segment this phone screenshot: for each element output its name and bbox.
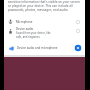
staticText: Sound from your device, like calls, and … [16,31,51,38]
staticText: Device audio [16,27,34,31]
staticText: Device audio and microphone [17,46,75,50]
button[interactable]: Device audio [4,27,85,40]
button[interactable]: Microphone [4,18,85,26]
button[interactable]: Device audio and microphone [4,43,85,52]
staticText: Microphone [16,20,75,24]
staticText: sensitive information that's visible on … [8,0,80,12]
